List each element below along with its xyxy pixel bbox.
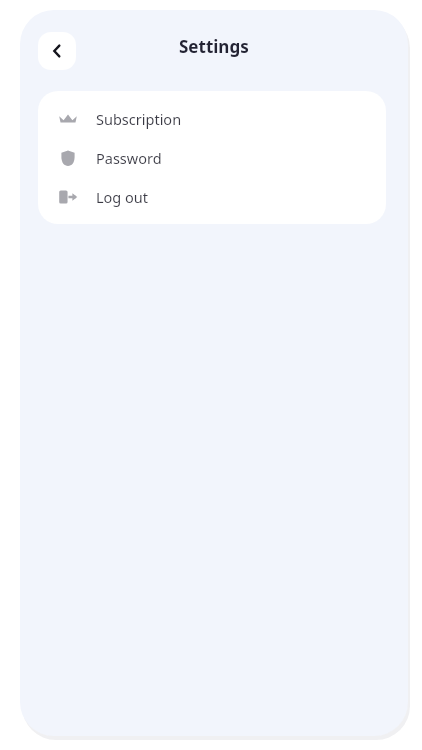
staticText: Subscription — [96, 109, 182, 129]
staticText: Password — [96, 148, 162, 168]
button[interactable]: Subscription — [38, 99, 386, 138]
staticText: Log out — [96, 187, 149, 207]
button[interactable]: Log out — [38, 177, 386, 216]
button[interactable]: Password — [38, 138, 386, 177]
button[interactable]: Back — [38, 32, 76, 70]
staticText: Settings — [179, 35, 249, 58]
